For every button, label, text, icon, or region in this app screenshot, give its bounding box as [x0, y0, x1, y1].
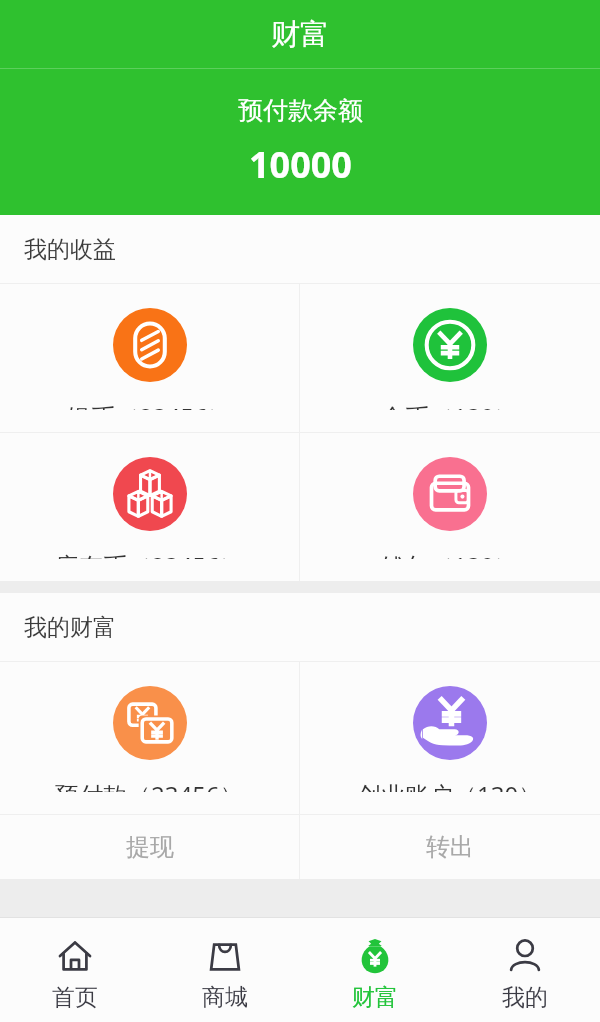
staticText: 我的财富	[24, 613, 116, 642]
button[interactable]: 钱包（130）	[300, 433, 600, 581]
button[interactable]: 银币（23456）	[0, 284, 299, 432]
button[interactable]: 转出	[300, 815, 600, 879]
staticText: 库存币（23456）	[55, 549, 244, 559]
button[interactable]: 商城	[150, 918, 300, 1022]
button[interactable]: 财富	[300, 918, 450, 1022]
staticText: 金币（130）	[381, 400, 519, 410]
staticText: 钱包（130）	[381, 549, 519, 559]
staticText: 我的	[502, 983, 548, 1012]
staticText: 10000	[249, 140, 352, 189]
button[interactable]: 预付款（23456）	[0, 662, 299, 814]
button[interactable]: 我的	[450, 918, 600, 1022]
button[interactable]: 创业账户（130）	[300, 662, 600, 814]
button[interactable]: 金币（130）	[300, 284, 600, 432]
staticText: 财富	[271, 16, 329, 53]
staticText: 提现	[126, 832, 174, 862]
staticText: 我的收益	[24, 235, 116, 264]
button[interactable]: 首页	[0, 918, 150, 1022]
staticText: 财富	[352, 983, 398, 1012]
staticText: 预付款（23456）	[55, 778, 244, 792]
staticText: 转出	[426, 832, 474, 862]
staticText: 创业账户（130）	[357, 778, 543, 792]
button[interactable]: 提现	[0, 815, 299, 879]
staticText: 首页	[52, 983, 98, 1012]
staticText: 银币（23456）	[67, 400, 232, 410]
staticText: 商城	[202, 983, 248, 1012]
staticText: 预付款余额	[238, 95, 363, 126]
button[interactable]: 库存币（23456）	[0, 433, 299, 581]
